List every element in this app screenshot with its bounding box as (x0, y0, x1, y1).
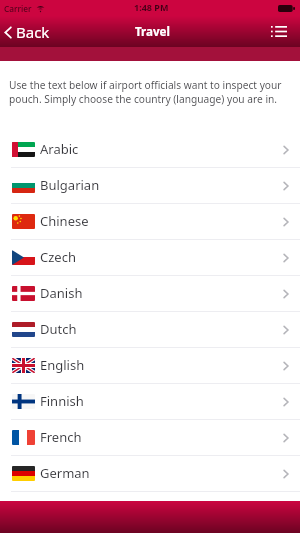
button[interactable]: Arabic (0, 132, 300, 168)
staticText: 1:48 PM (134, 1, 169, 13)
button[interactable]: Finnish (0, 384, 300, 420)
staticText: Chinese (40, 212, 89, 230)
button[interactable]: Czech (0, 240, 300, 276)
staticText: Arabic (40, 140, 79, 158)
staticText: Bulgarian (40, 176, 100, 194)
button[interactable]: Back (0, 17, 56, 47)
staticText: English (40, 356, 85, 374)
staticText: Use the text below if airport officials … (9, 78, 293, 106)
staticText: Finnish (40, 392, 84, 410)
button[interactable]: English (0, 348, 300, 384)
staticText: Greek (40, 500, 77, 518)
staticText: Dutch (40, 320, 77, 338)
staticText: Travel (135, 24, 171, 40)
button[interactable]: Greek (0, 492, 300, 528)
button[interactable]: Menu (260, 18, 300, 45)
staticText: Czech (40, 248, 76, 266)
button[interactable]: French (0, 420, 300, 456)
button[interactable]: Dutch (0, 312, 300, 348)
button[interactable]: Chinese (0, 204, 300, 240)
staticText: German (40, 464, 90, 482)
staticText: Carrier (4, 3, 32, 14)
staticText: French (40, 428, 82, 446)
button[interactable]: Bulgarian (0, 168, 300, 204)
staticText: Back (16, 22, 50, 42)
staticText: Danish (40, 284, 83, 302)
button[interactable]: Danish (0, 276, 300, 312)
button[interactable]: German (0, 456, 300, 492)
